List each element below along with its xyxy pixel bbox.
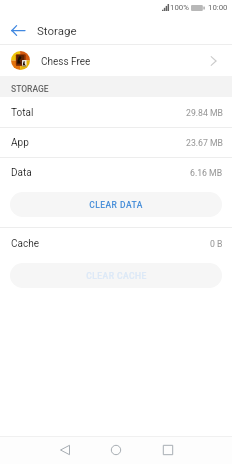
staticText: STORAGE: [11, 84, 49, 94]
button[interactable]: Back: [51, 437, 79, 463]
staticText: CLEAR DATA: [89, 200, 143, 210]
staticText: 6.16 MB: [190, 168, 223, 178]
button[interactable]: CLEAR CACHE: [10, 263, 222, 288]
staticText: Chess Free: [41, 56, 91, 68]
staticText: App: [11, 137, 29, 149]
staticText: 23.67 MB: [186, 138, 223, 148]
button[interactable]: Chess Free: [0, 45, 232, 76]
staticText: 10:00: [208, 3, 228, 12]
staticText: 100%: [170, 3, 189, 12]
staticText: 29.84 MB: [186, 108, 223, 118]
button[interactable]: Back: [7, 19, 29, 41]
staticText: CLEAR CACHE: [86, 271, 147, 281]
button[interactable]: Home: [102, 437, 130, 463]
staticText: Total: [11, 107, 34, 119]
staticText: Cache: [11, 238, 39, 250]
button[interactable]: Recents: [154, 437, 182, 463]
staticText: Storage: [37, 24, 77, 37]
staticText: Data: [11, 167, 32, 179]
staticText: 0 B: [210, 239, 223, 249]
button[interactable]: CLEAR DATA: [10, 192, 222, 217]
